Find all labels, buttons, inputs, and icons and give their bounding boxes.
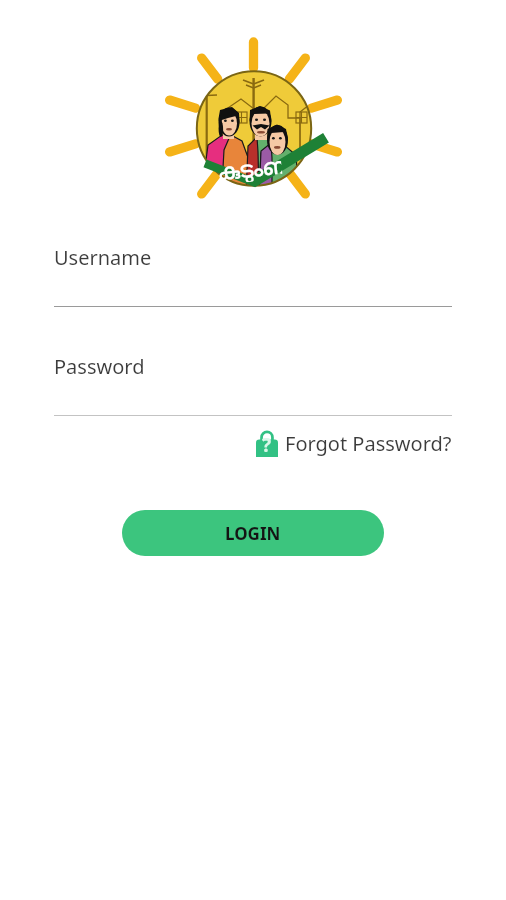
staticText: ?: [262, 432, 272, 458]
button[interactable]: Forgot Password: [54, 428, 452, 458]
staticText: LOGIN: [225, 522, 281, 545]
staticText: Password: [54, 353, 145, 380]
button[interactable]: LOGIN: [122, 510, 384, 556]
staticText: Username: [54, 244, 152, 271]
staticText: കുടുംബശ്രീ: [217, 156, 283, 185]
other: Forgot Password: [256, 430, 278, 457]
staticText: Forgot Password?: [285, 430, 452, 457]
